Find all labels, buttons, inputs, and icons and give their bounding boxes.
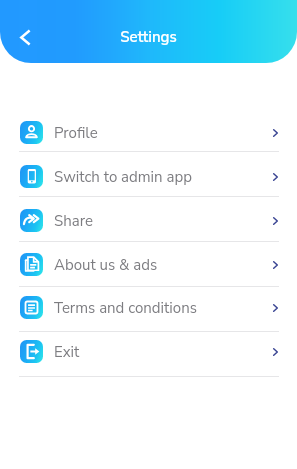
staticText: Profile [54, 123, 98, 143]
staticText: About us & ads [54, 255, 158, 275]
staticText: Settings [120, 27, 177, 47]
staticText: Share [54, 211, 93, 231]
button[interactable]: Share [0, 198, 297, 243]
staticText: Terms and conditions [54, 298, 197, 318]
button[interactable]: Back [11, 23, 39, 51]
button[interactable]: About us & ads [0, 242, 297, 287]
staticText: Switch to admin app [54, 167, 192, 187]
button[interactable]: Terms and conditions [0, 285, 297, 330]
button[interactable]: Switch to admin app [0, 154, 297, 199]
button[interactable]: Profile [0, 110, 297, 155]
button[interactable]: Exit [0, 329, 297, 374]
staticText: Exit [54, 342, 80, 362]
